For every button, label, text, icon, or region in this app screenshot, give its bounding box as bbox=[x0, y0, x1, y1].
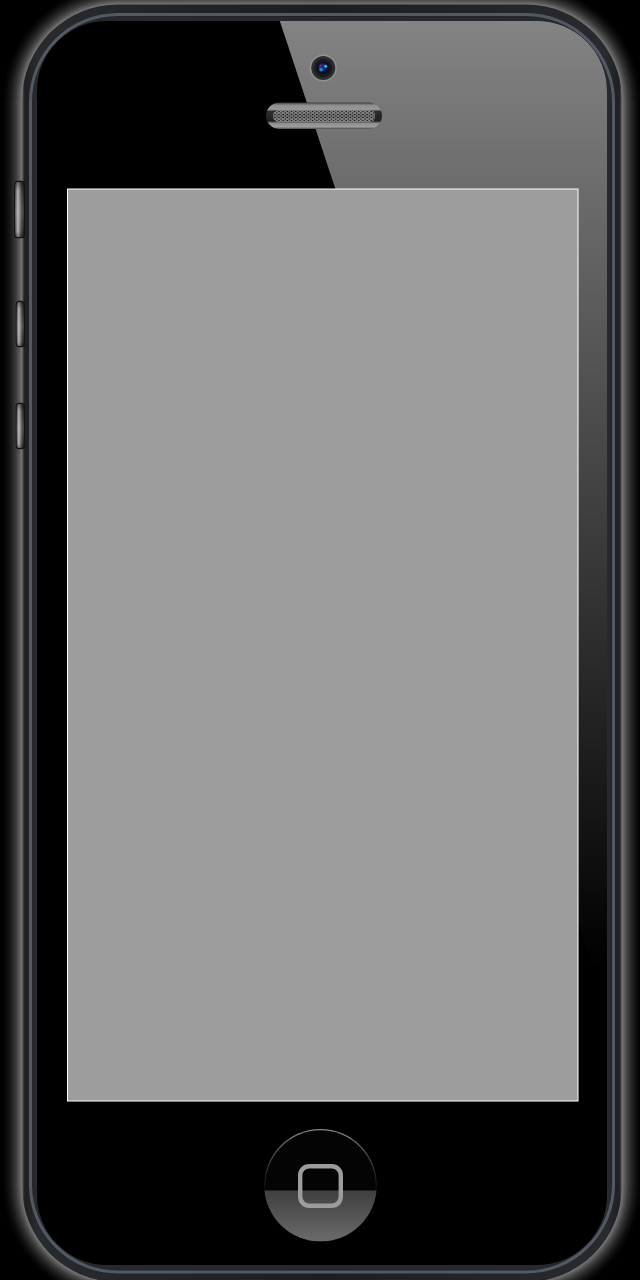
button[interactable]: Smartphone device mockup bbox=[0, 0, 640, 1280]
